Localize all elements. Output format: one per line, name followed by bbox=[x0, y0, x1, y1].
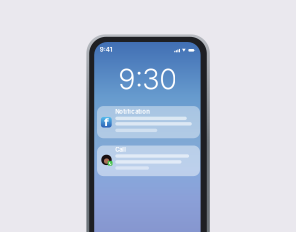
staticText: Notification bbox=[115, 108, 150, 115]
staticText: 9:41 bbox=[100, 46, 113, 53]
staticText: 9:30 bbox=[118, 62, 176, 96]
button[interactable]: Call bbox=[97, 145, 200, 176]
staticText: Call bbox=[115, 146, 126, 153]
button[interactable]: Notification bbox=[97, 106, 200, 138]
staticText: f bbox=[104, 116, 109, 129]
